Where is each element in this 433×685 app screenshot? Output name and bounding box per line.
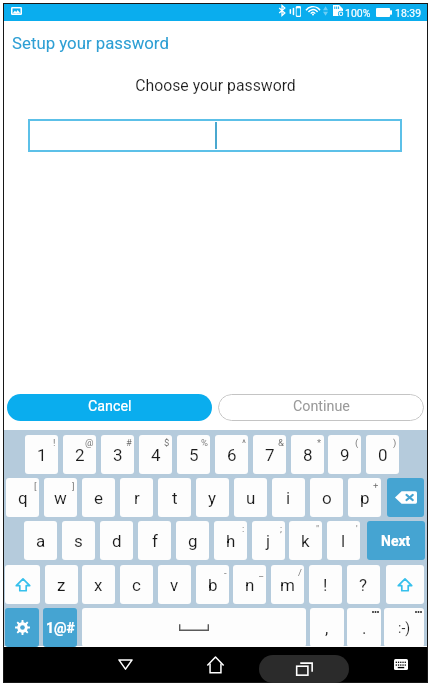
staticText: @ [85, 437, 94, 448]
staticText: k [301, 531, 310, 551]
staticText: q [18, 488, 28, 508]
button[interactable]: 4 [139, 435, 172, 474]
staticText: t [172, 488, 178, 508]
staticText: $ [164, 437, 170, 448]
button[interactable]: p [348, 478, 381, 517]
staticText: 3 [113, 445, 123, 465]
button[interactable]: Home [190, 647, 240, 682]
button[interactable]: h [214, 521, 247, 560]
button[interactable]: Back [100, 647, 150, 682]
button[interactable]: u [234, 478, 267, 517]
staticText: p [360, 488, 370, 508]
button[interactable]: w [44, 478, 77, 517]
button[interactable] [5, 608, 39, 647]
button[interactable]: x [82, 565, 115, 604]
button[interactable]: j [252, 521, 285, 560]
button[interactable]: 1@# [43, 608, 77, 647]
staticText: z [57, 575, 66, 595]
button[interactable]: r [120, 478, 153, 517]
button[interactable]: c [120, 565, 153, 604]
staticText: / [298, 567, 302, 578]
button[interactable]: n [233, 565, 266, 604]
staticText: 1 [37, 445, 47, 465]
button[interactable]: q [6, 478, 39, 517]
button[interactable]: 9 [328, 435, 361, 474]
button[interactable]: v [158, 565, 191, 604]
button[interactable]: ! [309, 565, 342, 604]
staticText: Setup your password [12, 33, 169, 53]
button[interactable]: 6 [215, 435, 248, 474]
button[interactable]: a [24, 521, 57, 560]
staticText: 5 [189, 445, 199, 465]
button[interactable]: :-) [384, 608, 424, 647]
staticText: g [188, 531, 198, 551]
staticText: 100% [345, 7, 371, 19]
staticText: b [208, 575, 218, 595]
button[interactable]: z [45, 565, 78, 604]
button[interactable]: Switch keyboard [379, 647, 423, 682]
staticText: Next [381, 533, 411, 549]
staticText: :-) [398, 620, 411, 636]
button[interactable]: e [82, 478, 115, 517]
staticText: & [278, 437, 284, 448]
staticText: v [170, 575, 179, 595]
button[interactable]: m [271, 565, 304, 604]
staticText: ( [355, 437, 359, 448]
button[interactable]: 1 [25, 435, 58, 474]
button[interactable] [5, 565, 40, 604]
button[interactable]: , [310, 608, 344, 647]
button[interactable]: 0 [366, 435, 399, 474]
button[interactable]: s [62, 521, 95, 560]
button[interactable]: 8 [291, 435, 324, 474]
button[interactable]: y [196, 478, 229, 517]
button[interactable]: Recent apps [259, 655, 349, 683]
staticText: 9 [340, 445, 350, 465]
button[interactable]: o [310, 478, 343, 517]
staticText: 4 [151, 445, 161, 465]
staticText: w [54, 488, 67, 508]
button[interactable]: 2 [63, 435, 96, 474]
staticText: u [246, 488, 256, 508]
staticText: ? [359, 575, 368, 595]
staticText: h [226, 531, 236, 551]
staticText: 8 [303, 445, 313, 465]
button[interactable]: b [196, 565, 229, 604]
staticText: , [325, 618, 329, 638]
button[interactable]: Next [367, 521, 425, 560]
staticText: y [208, 488, 217, 508]
button[interactable]: t [158, 478, 191, 517]
staticText: 6 [227, 445, 237, 465]
button[interactable] [387, 478, 424, 517]
button[interactable]: l [327, 521, 360, 560]
staticText: " [316, 523, 320, 534]
button[interactable]: Continue [218, 394, 424, 421]
button[interactable]: . [347, 608, 381, 647]
staticText: f [152, 531, 158, 551]
staticText: - [224, 567, 227, 578]
staticText: % [201, 437, 208, 448]
staticText: Continue [293, 398, 350, 415]
staticText: 18:39 [395, 7, 422, 19]
staticText: o [322, 488, 332, 508]
button[interactable]: 5 [177, 435, 210, 474]
staticText: x [94, 575, 103, 595]
button[interactable]: ? [347, 565, 380, 604]
staticText: : [242, 523, 245, 534]
button[interactable]: f [138, 521, 171, 560]
button[interactable]: i [272, 478, 305, 517]
button[interactable]: g [176, 521, 209, 560]
staticText: [ [34, 480, 37, 491]
button[interactable]: 3 [101, 435, 134, 474]
staticText: + [373, 480, 379, 491]
staticText: 7 [265, 445, 275, 465]
button[interactable]: 7 [253, 435, 286, 474]
staticText: a [36, 531, 46, 551]
button[interactable] [82, 608, 306, 647]
button[interactable]: k [289, 521, 322, 560]
button[interactable] [28, 119, 402, 152]
button[interactable]: Cancel [7, 394, 212, 421]
button[interactable]: d [100, 521, 133, 560]
staticText: 2 [75, 445, 85, 465]
button[interactable] [386, 565, 424, 604]
staticText: 0 [378, 445, 388, 465]
